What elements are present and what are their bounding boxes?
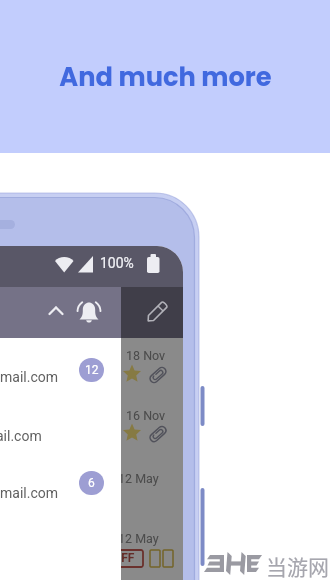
button[interactable]: 6 — [79, 471, 104, 495]
button[interactable]: Compose — [143, 295, 173, 327]
staticText: 12 May — [121, 531, 159, 546]
staticText: 当游网 — [266, 551, 329, 580]
staticText: OFF — [121, 551, 135, 565]
staticText: 100% — [100, 255, 134, 271]
staticText: ail.com — [0, 428, 42, 444]
button[interactable]: ail.com — [0, 428, 42, 444]
staticText: mail.com — [0, 369, 58, 385]
staticText: 12 May — [121, 471, 159, 486]
staticText: mail.com — [0, 485, 58, 501]
button[interactable]: Notifications — [76, 295, 104, 327]
staticText: 18 Nov — [126, 348, 166, 363]
staticText: 16 Nov — [126, 408, 166, 423]
button[interactable]: mail.com — [0, 485, 58, 501]
staticText: 6 — [88, 476, 95, 490]
button[interactable]: mail.com — [0, 369, 58, 385]
staticText: 12 — [85, 363, 99, 377]
button[interactable]: Collapse — [44, 295, 70, 325]
button[interactable]: 12 — [79, 358, 104, 382]
staticText: And much more — [59, 59, 272, 95]
